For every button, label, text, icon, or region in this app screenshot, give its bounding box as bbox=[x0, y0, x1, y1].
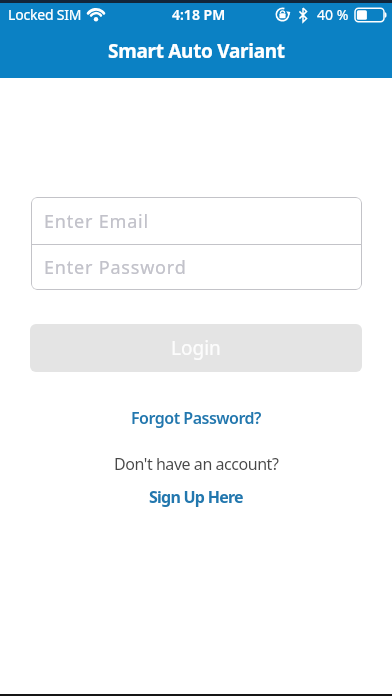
button[interactable]: Enter Password bbox=[31, 245, 362, 290]
staticText: 4:18 PM bbox=[172, 5, 226, 24]
staticText: Login bbox=[171, 335, 221, 361]
button[interactable]: Forgot Password? bbox=[131, 407, 261, 429]
staticText: Enter Email bbox=[44, 209, 149, 234]
button[interactable]: Sign Up Here bbox=[149, 486, 243, 508]
staticText: Forgot Password? bbox=[131, 407, 261, 429]
staticText: Don't have an account? bbox=[114, 453, 279, 475]
staticText: Sign Up Here bbox=[149, 486, 243, 508]
staticText: Enter Password bbox=[44, 255, 187, 280]
staticText: Smart Auto Variant bbox=[108, 38, 285, 64]
staticText: 40 % bbox=[317, 5, 349, 24]
staticText: Locked SIM bbox=[8, 5, 82, 24]
button[interactable]: Enter Email bbox=[31, 197, 362, 245]
